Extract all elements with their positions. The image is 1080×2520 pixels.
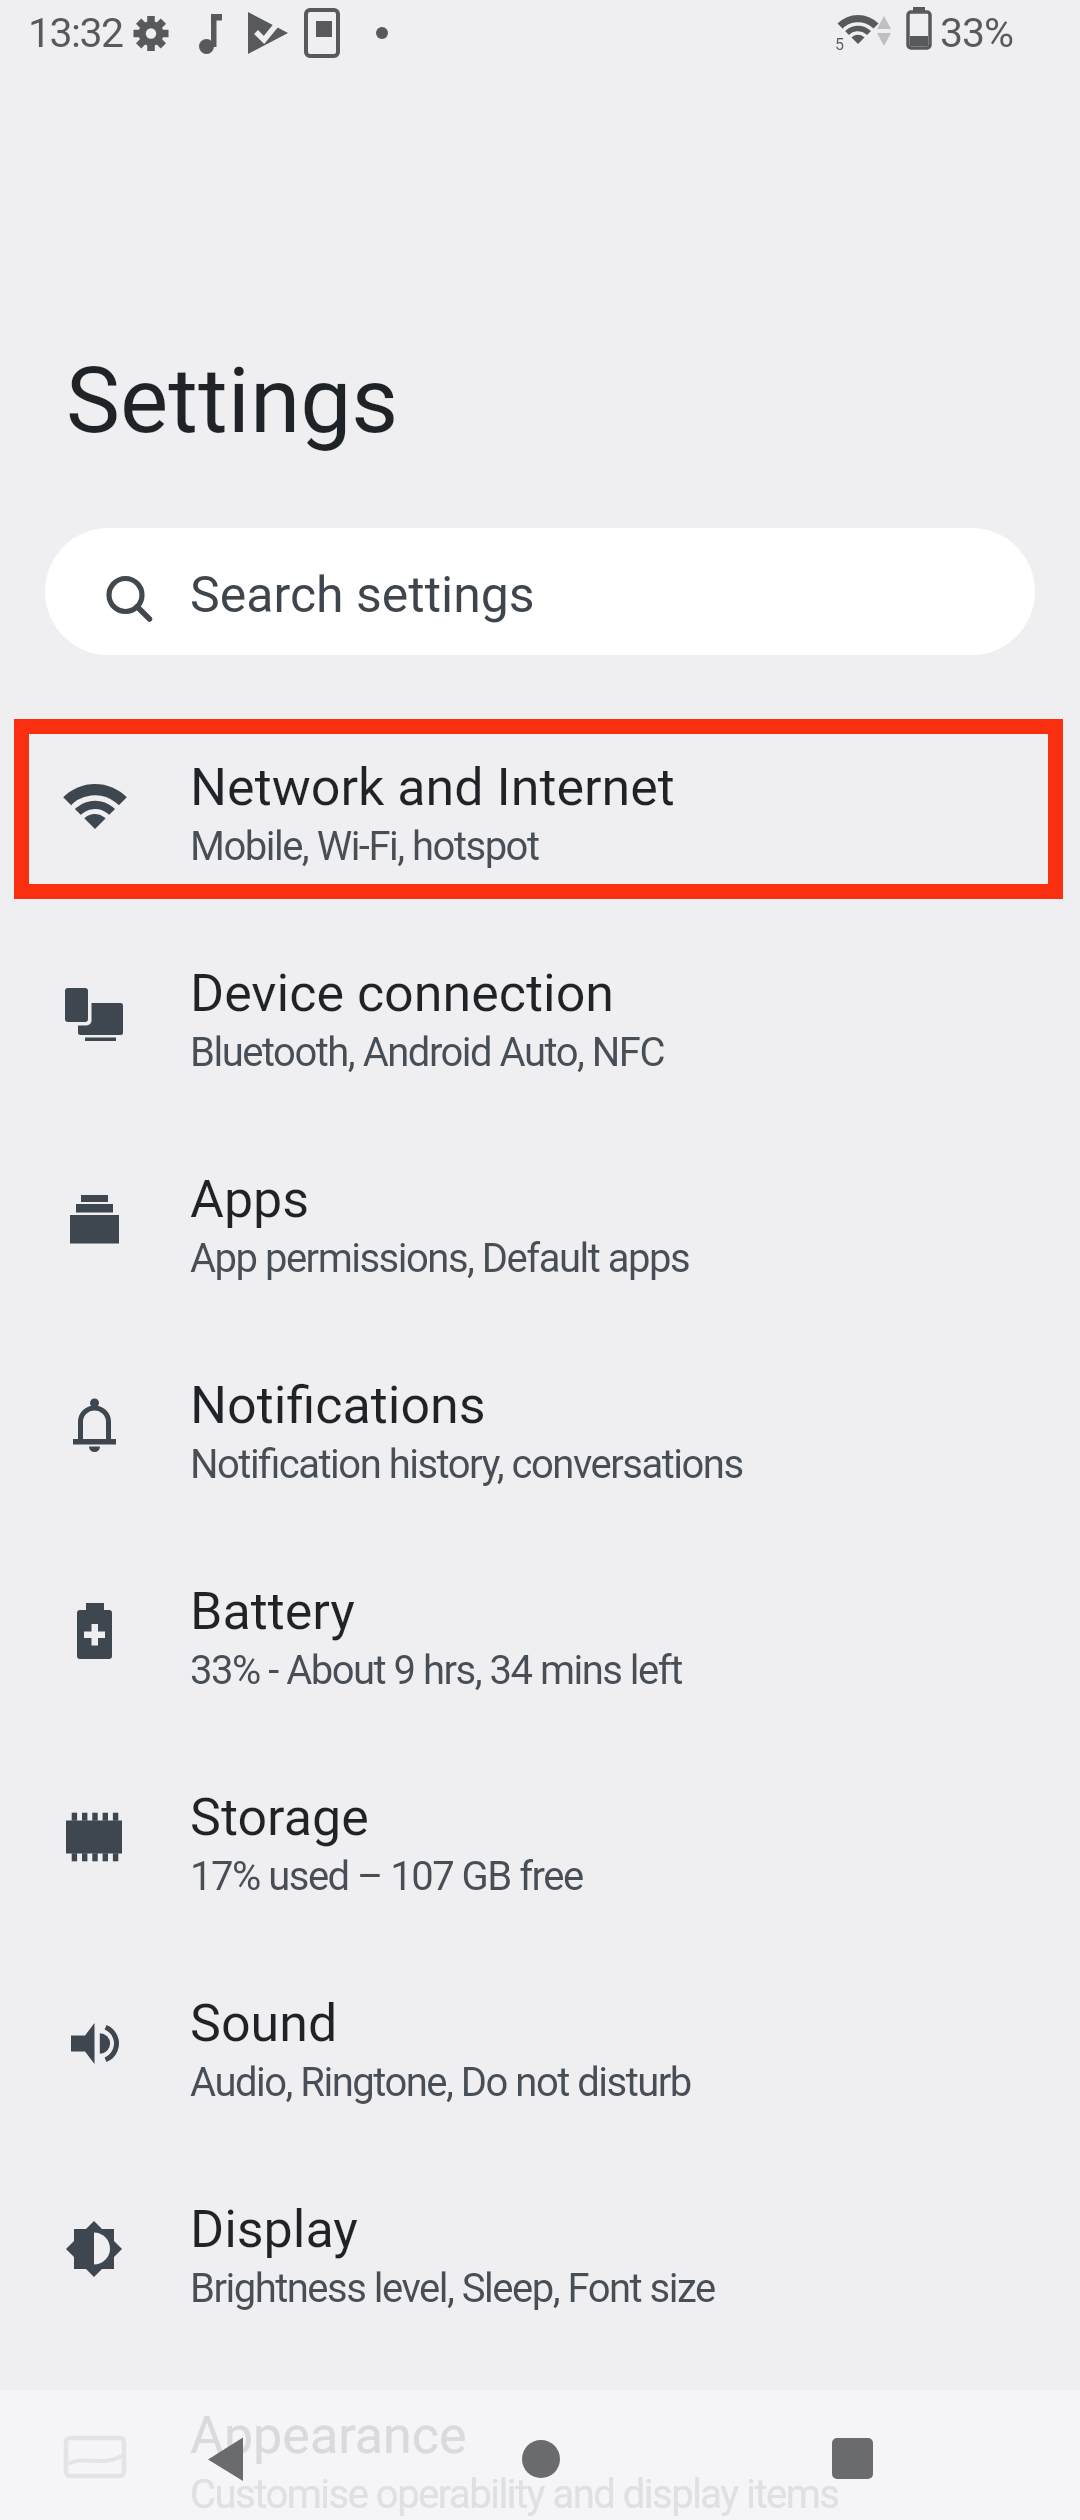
staticText: Brightness level, Sleep, Font size: [190, 2265, 715, 2312]
staticText: App permissions, Default apps: [190, 1235, 690, 1282]
button[interactable]: Battery: [0, 1528, 1080, 1734]
button[interactable]: Notifications: [0, 1322, 1080, 1528]
staticText: Notifications: [190, 1375, 486, 1436]
button[interactable]: [805, 2411, 901, 2507]
button[interactable]: Display: [0, 2146, 1080, 2352]
staticText: Settings: [66, 348, 399, 455]
button[interactable]: Storage: [0, 1734, 1080, 1940]
staticText: Audio, Ringtone, Do not disturb: [190, 2059, 691, 2106]
button[interactable]: Appearance: [0, 2352, 1080, 2520]
staticText: 33% - About 9 hrs, 34 mins left: [190, 1647, 682, 1694]
staticText: 13:32: [28, 9, 123, 57]
staticText: Storage: [190, 1787, 369, 1848]
staticText: Display: [190, 2199, 358, 2260]
button[interactable]: [177, 2411, 273, 2507]
staticText: 5: [835, 35, 844, 54]
staticText: Sound: [190, 1993, 338, 2054]
staticText: Notification history, conversations: [190, 1441, 743, 1488]
button[interactable]: Network and Internet: [0, 704, 1080, 910]
staticText: Device connection: [190, 963, 615, 1024]
staticText: Apps: [190, 1169, 310, 1230]
button[interactable]: Device connection: [0, 910, 1080, 1116]
staticText: Battery: [190, 1581, 355, 1642]
staticText: Network and Internet: [190, 757, 675, 818]
button[interactable]: [493, 2411, 589, 2507]
button[interactable]: [45, 528, 1035, 655]
staticText: Search settings: [190, 566, 535, 625]
staticText: 33%: [940, 9, 1014, 57]
button[interactable]: Sound: [0, 1940, 1080, 2146]
staticText: Customise operability and display items: [190, 2471, 839, 2518]
staticText: Mobile, Wi-Fi, hotspot: [190, 823, 539, 870]
staticText: Bluetooth, Android Auto, NFC: [190, 1029, 664, 1076]
button[interactable]: Apps: [0, 1116, 1080, 1322]
staticText: 17% used – 107 GB free: [190, 1853, 583, 1900]
staticText: Appearance: [190, 2405, 467, 2466]
